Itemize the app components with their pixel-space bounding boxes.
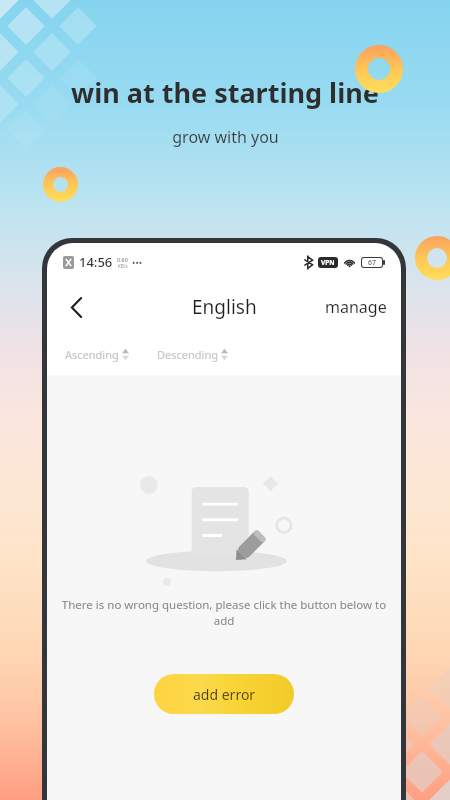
staticText: KB/s (118, 263, 128, 269)
staticText: Descending (157, 347, 218, 362)
staticText: 0.60 (117, 256, 128, 263)
button[interactable]: add error (154, 674, 294, 714)
staticText: 14:56 (79, 253, 113, 271)
staticText: manage (325, 296, 387, 318)
button[interactable]: Back (55, 286, 97, 328)
button[interactable]: Ascending (61, 341, 133, 368)
staticText: grow with you (172, 126, 279, 148)
button[interactable]: manage (311, 288, 401, 326)
staticText: VPN (321, 258, 335, 267)
staticText: There is no wrong question, please click… (57, 597, 391, 629)
staticText: 67 (368, 258, 377, 267)
staticText: ••• (132, 256, 143, 268)
staticText: English (192, 294, 257, 320)
staticText: win at the starting line (71, 74, 379, 111)
staticText: add error (193, 685, 256, 704)
staticText: Ascending (65, 347, 119, 362)
button[interactable]: Descending (153, 341, 232, 368)
